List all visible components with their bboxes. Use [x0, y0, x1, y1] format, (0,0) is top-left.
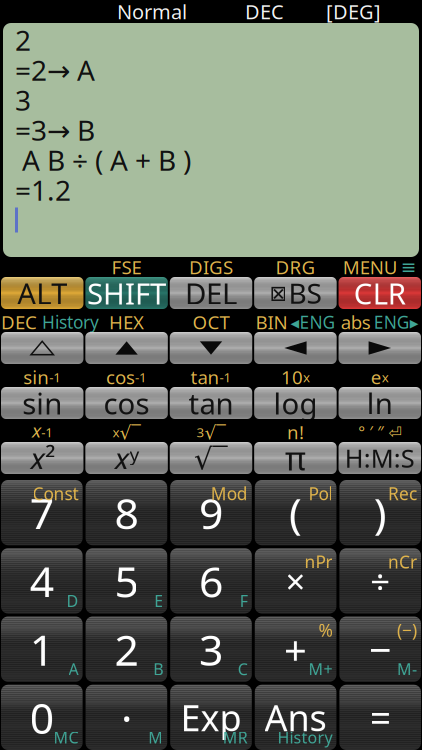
- button[interactable]: ln: [339, 387, 421, 419]
- button[interactable]: 4: [1, 548, 83, 613]
- button[interactable]: 1: [1, 616, 83, 682]
- button[interactable]: ×: [255, 548, 336, 613]
- staticText: -1: [135, 368, 147, 386]
- staticText: ⊠: [269, 281, 287, 305]
- staticText: √‾: [194, 438, 228, 477]
- button[interactable]: 𝑥ʸ: [85, 442, 168, 474]
- staticText: 𝑥: [31, 423, 41, 441]
- staticText: F: [240, 590, 248, 611]
- staticText: SHIFT: [87, 273, 166, 312]
- staticText: OCT: [192, 310, 229, 334]
- staticText: ALT: [17, 273, 67, 312]
- button[interactable]: Left: [254, 332, 337, 364]
- staticText: DEC: [245, 0, 284, 25]
- button[interactable]: CLR: [339, 277, 421, 309]
- staticText: cos: [104, 383, 150, 422]
- staticText: =2→ A: [15, 51, 95, 89]
- staticText: e: [371, 365, 382, 389]
- staticText: CLR: [354, 273, 406, 312]
- staticText: =: [370, 693, 391, 742]
- button[interactable]: (: [255, 480, 336, 545]
- staticText: ◂ENG: [290, 310, 335, 333]
- button[interactable]: 3: [170, 616, 252, 682]
- staticText: 𝑥²: [29, 438, 55, 477]
- staticText: (: [289, 484, 302, 541]
- staticText: ≡: [401, 256, 417, 278]
- button[interactable]: Right: [339, 332, 421, 364]
- staticText: 𝑥ʸ: [114, 438, 140, 477]
- staticText: DEL: [185, 273, 237, 312]
- staticText: E: [154, 590, 163, 611]
- staticText: ° ′ ″ ⏎: [358, 421, 401, 443]
- button[interactable]: ALT: [1, 277, 83, 309]
- button[interactable]: ⊠: [254, 277, 337, 309]
- staticText: -1: [219, 368, 231, 386]
- staticText: Exp: [180, 693, 241, 741]
- staticText: 5: [114, 552, 138, 609]
- staticText: sin: [23, 365, 49, 389]
- staticText: History: [42, 310, 99, 333]
- button[interactable]: log: [254, 387, 337, 419]
- button[interactable]: ÷: [339, 548, 421, 613]
- button[interactable]: 8: [86, 480, 167, 545]
- button[interactable]: +: [255, 616, 336, 682]
- staticText: x: [303, 368, 310, 386]
- button[interactable]: Up: [1, 332, 83, 364]
- staticText: ÷: [370, 558, 390, 604]
- button[interactable]: −: [339, 616, 421, 682]
- button[interactable]: ): [339, 480, 421, 545]
- button[interactable]: SHIFT: [85, 277, 168, 309]
- staticText: +: [284, 623, 307, 676]
- staticText: M+: [308, 658, 332, 680]
- button[interactable]: Exp: [170, 685, 252, 750]
- button[interactable]: Down: [170, 332, 252, 364]
- staticText: nCr: [388, 550, 417, 573]
- staticText: =3→ B: [15, 111, 95, 149]
- staticText: %: [318, 618, 332, 641]
- staticText: M: [148, 727, 163, 748]
- button[interactable]: tan: [170, 387, 252, 419]
- staticText: √‾: [120, 420, 141, 444]
- staticText: M-: [397, 658, 417, 680]
- button[interactable]: ·: [86, 685, 167, 750]
- button[interactable]: 6: [170, 548, 252, 613]
- staticText: 6: [199, 552, 223, 609]
- staticText: 8: [114, 484, 138, 541]
- button[interactable]: H:M:S: [339, 442, 421, 474]
- staticText: x: [113, 423, 120, 441]
- button[interactable]: Ans: [255, 685, 336, 750]
- button[interactable]: 0: [1, 685, 83, 750]
- staticText: -1: [49, 368, 61, 386]
- button[interactable]: Up: [85, 332, 168, 364]
- staticText: 3: [196, 423, 204, 441]
- staticText: Mod: [211, 482, 248, 505]
- button[interactable]: 9: [170, 480, 252, 545]
- button[interactable]: 5: [86, 548, 167, 613]
- staticText: Ans: [265, 693, 327, 741]
- button[interactable]: cos: [85, 387, 168, 419]
- button[interactable]: DEL: [170, 277, 252, 309]
- staticText: x: [382, 368, 389, 386]
- button[interactable]: =: [339, 685, 421, 750]
- staticText: MC: [54, 727, 79, 748]
- button[interactable]: 7: [1, 480, 83, 545]
- staticText: 10: [281, 365, 303, 389]
- staticText: nPr: [304, 550, 332, 573]
- staticText: tan: [188, 383, 233, 422]
- staticText: sin: [22, 383, 62, 422]
- button[interactable]: 𝑥²: [1, 442, 83, 474]
- button[interactable]: sin: [1, 387, 83, 419]
- staticText: −: [369, 623, 392, 676]
- button[interactable]: 2: [86, 616, 167, 682]
- staticText: BS: [288, 274, 321, 312]
- staticText: DEC: [1, 310, 37, 334]
- button[interactable]: √‾: [170, 442, 252, 474]
- staticText: ln: [367, 383, 393, 422]
- staticText: 7: [30, 484, 54, 541]
- staticText: ): [374, 484, 387, 541]
- staticText: 4: [30, 552, 54, 609]
- button[interactable]: π: [254, 442, 337, 474]
- staticText: FSE: [112, 255, 142, 279]
- staticText: 0: [30, 689, 54, 746]
- staticText: 2: [15, 21, 31, 59]
